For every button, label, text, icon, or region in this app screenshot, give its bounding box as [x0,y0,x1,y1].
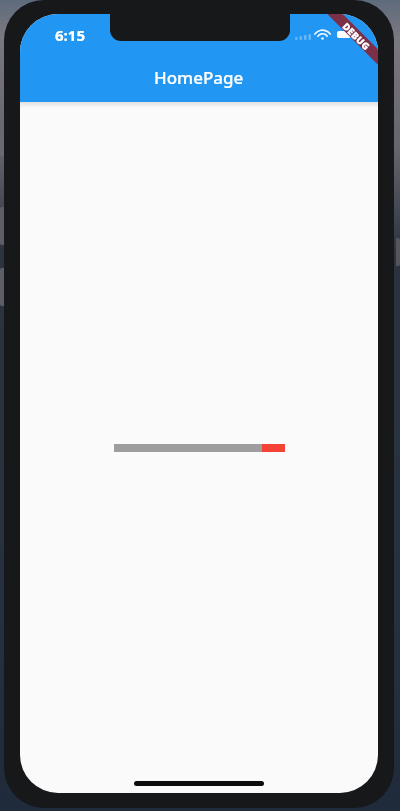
staticText: 6:15 [55,25,85,45]
staticText: DEBUG [341,20,373,52]
staticText: HomePage [154,66,244,89]
